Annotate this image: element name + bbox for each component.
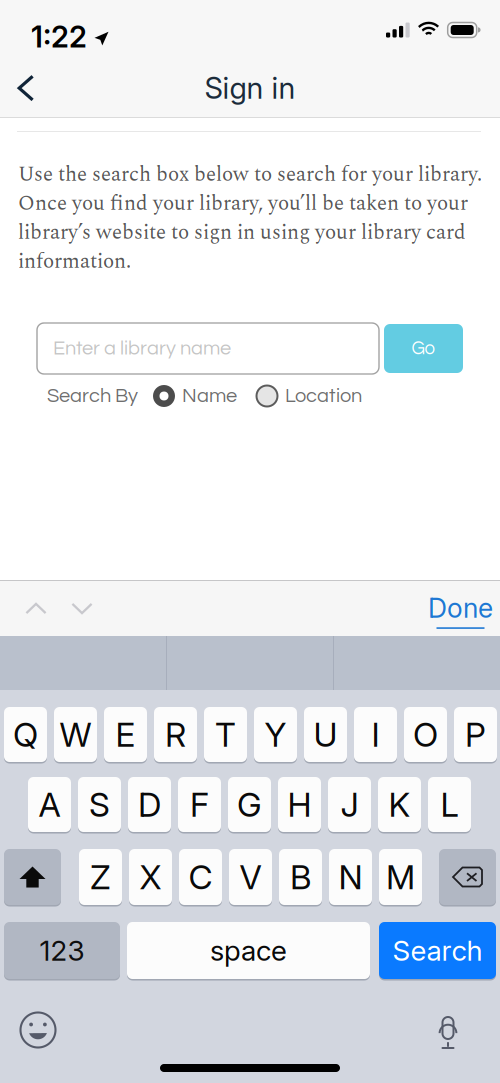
staticText: H: [287, 784, 311, 825]
staticText: Done: [428, 592, 493, 624]
button[interactable]: Y: [254, 707, 297, 762]
staticText: I: [371, 714, 379, 755]
staticText: M: [386, 857, 415, 897]
staticText: A: [38, 784, 60, 825]
button[interactable]: Name: [138, 381, 237, 411]
button[interactable]: N: [329, 849, 372, 905]
staticText: P: [465, 714, 486, 755]
staticText: L: [440, 784, 458, 825]
staticText: 123: [39, 934, 84, 967]
button[interactable]: Emoji keyboard: [16, 1008, 60, 1052]
staticText: Use the search box below to search for y…: [18, 159, 482, 190]
staticText: V: [239, 857, 261, 897]
staticText: Location: [285, 386, 362, 406]
staticText: Z: [90, 857, 111, 897]
staticText: R: [165, 714, 186, 755]
staticText: Name: [182, 386, 237, 406]
button[interactable]: O: [404, 707, 447, 762]
button[interactable]: D: [128, 777, 171, 832]
staticText: D: [138, 784, 161, 825]
staticText: Go: [411, 339, 435, 358]
staticText: 1:22: [31, 19, 87, 54]
button[interactable]: K: [378, 777, 421, 832]
button[interactable]: 123: [4, 922, 120, 979]
button[interactable]: F: [178, 777, 221, 832]
button[interactable]: Search: [379, 922, 496, 979]
button[interactable]: G: [228, 777, 271, 832]
button[interactable]: Go: [384, 324, 463, 373]
button[interactable]: Z: [79, 849, 122, 905]
staticText: W: [59, 714, 91, 755]
button[interactable]: P: [454, 707, 497, 762]
button[interactable]: Shift: [4, 849, 61, 905]
staticText: Once you find your library, you’ll be ta…: [18, 188, 468, 219]
staticText: space: [210, 934, 287, 967]
button[interactable]: I: [354, 707, 397, 762]
button[interactable]: W: [54, 707, 97, 762]
button[interactable]: A: [28, 777, 71, 832]
button[interactable]: E: [104, 707, 147, 762]
button[interactable]: R: [154, 707, 197, 762]
button[interactable]: Library name field: [37, 323, 379, 374]
staticText: Sign in: [204, 70, 295, 106]
staticText: library’s website to sign in using your …: [18, 217, 466, 248]
button[interactable]: U: [304, 707, 347, 762]
staticText: K: [388, 784, 410, 825]
button[interactable]: J: [328, 777, 371, 832]
button[interactable]: Done: [428, 592, 493, 629]
staticText: X: [139, 857, 161, 897]
staticText: Search By: [47, 386, 138, 406]
staticText: Enter a library name: [53, 338, 231, 359]
staticText: E: [115, 714, 135, 755]
button[interactable]: T: [204, 707, 247, 762]
staticText: Y: [264, 714, 286, 755]
button[interactable]: Back: [0, 59, 52, 117]
staticText: J: [340, 784, 358, 825]
staticText: Q: [13, 714, 38, 755]
button[interactable]: S: [78, 777, 121, 832]
button[interactable]: Dictation: [428, 1006, 468, 1050]
staticText: O: [413, 714, 438, 755]
button[interactable]: C: [179, 849, 222, 905]
staticText: F: [190, 784, 209, 825]
button[interactable]: space: [127, 922, 370, 979]
button[interactable]: Previous field: [13, 581, 59, 636]
staticText: U: [313, 714, 337, 755]
staticText: S: [89, 784, 110, 825]
button[interactable]: Location: [237, 381, 362, 411]
button[interactable]: X: [129, 849, 172, 905]
staticText: T: [215, 714, 236, 755]
button[interactable]: Q: [4, 707, 47, 762]
staticText: N: [338, 857, 362, 897]
button[interactable]: Next field: [59, 581, 105, 636]
button[interactable]: Delete: [439, 849, 496, 905]
staticText: G: [237, 784, 262, 825]
staticText: information.: [18, 246, 131, 277]
staticText: Search: [392, 934, 482, 967]
staticText: C: [188, 857, 212, 897]
button[interactable]: M: [379, 849, 422, 905]
button[interactable]: L: [428, 777, 471, 832]
button[interactable]: V: [229, 849, 272, 905]
button[interactable]: B: [279, 849, 322, 905]
button[interactable]: H: [278, 777, 321, 832]
staticText: B: [290, 857, 311, 897]
